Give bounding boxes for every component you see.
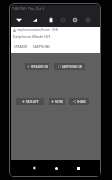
staticText: SPEAKER ON [31,65,48,69]
button[interactable]: SHARE [69,98,89,105]
button[interactable]: SPEAKER ON [25,63,49,70]
button[interactable]: SPEAKER [14,45,28,49]
button[interactable]: Recents [74,164,82,172]
button[interactable]: EARPHONE [33,45,50,49]
staticText: RATE APP [26,100,39,104]
button[interactable]: EARPHONE ON [54,63,85,70]
button[interactable]: MORE [49,98,65,105]
staticText: EARPHONE ON [62,65,82,69]
button[interactable]: RATE APP [16,98,44,105]
button[interactable]: Status [71,16,79,24]
staticText: 7:46 PM • Thu, Oct 3 [12,6,44,11]
button[interactable]: Status [84,16,92,24]
button[interactable]: Home [52,164,60,172]
button[interactable]: Back [30,164,38,172]
button[interactable]: Status [59,16,67,24]
button[interactable]: Battery [47,16,55,24]
button[interactable]: Signal [31,16,39,24]
staticText: MORE [55,100,64,104]
staticText: SHARE [77,100,86,104]
button[interactable]: Wifi [15,16,23,24]
staticText: earphonemodeoff.com · USB [17,28,58,32]
staticText: SPEAKER [14,45,28,49]
staticText: Earphone Mode Off [13,34,50,39]
staticText: EARPHONE [33,45,50,49]
